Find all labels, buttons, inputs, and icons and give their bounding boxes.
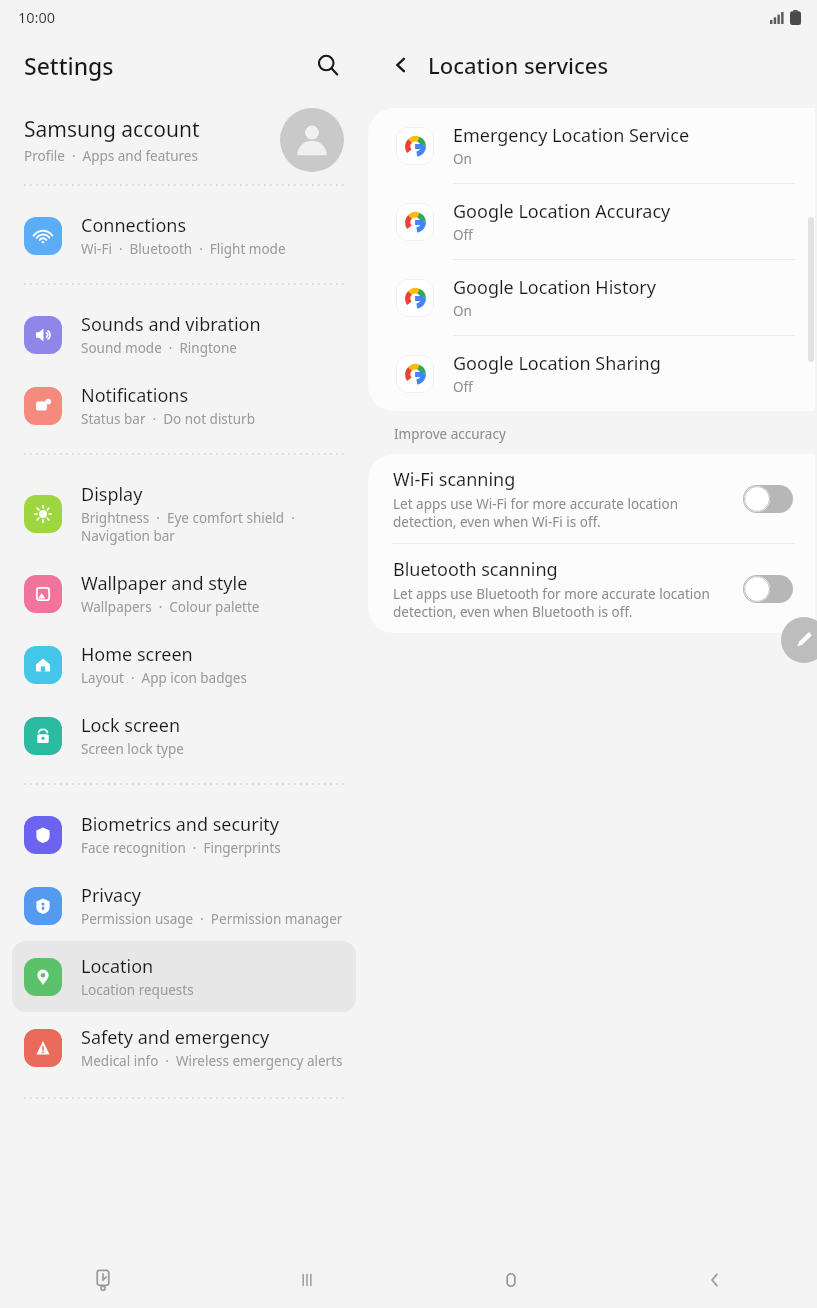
staticText: Location requests [81,981,194,999]
button[interactable]: Biometrics and security [12,799,356,870]
staticText: Layout · App icon badges [81,669,247,687]
button[interactable]: Wallpaper and style [12,558,356,629]
button[interactable]: Edit [781,617,817,663]
staticText: Google Location Sharing [453,351,661,376]
staticText: On [453,302,472,320]
staticText: Permission usage · Permission manager [81,910,343,928]
staticText: Connections [81,213,187,238]
button[interactable]: Privacy [12,870,356,941]
button[interactable]: Location [12,941,356,1012]
staticText: Location services [428,50,609,80]
staticText: Improve accuracy [394,425,506,443]
button[interactable]: Notifications [12,370,356,441]
staticText: Wi-Fi scanning [393,467,516,492]
staticText: Display [81,482,143,507]
staticText: Brightness · Eye comfort shield · [81,509,295,527]
button[interactable]: Samsung account [0,96,368,184]
button[interactable]: Google Location Sharing [368,336,815,411]
staticText: Face recognition · Fingerprints [81,839,281,857]
button[interactable]: Bluetooth scanning toggle [743,575,793,603]
staticText: Profile · Apps and features [24,147,198,165]
button[interactable]: Sounds and vibration [12,299,356,370]
staticText: Off [453,226,473,244]
staticText: Screen lock type [81,740,184,758]
staticText: Wi-Fi · Bluetooth · Flight mode [81,240,286,258]
staticText: Home screen [81,642,193,667]
button[interactable]: Back [613,1252,817,1308]
staticText: On [453,150,472,168]
button[interactable]: Search [306,43,350,87]
button[interactable]: Back [380,44,422,86]
staticText: Google Location History [453,275,656,300]
button[interactable]: Google Location Accuracy [368,184,815,259]
staticText: Let apps use Wi-Fi for more accurate loc… [393,495,678,531]
button[interactable]: Home [409,1252,613,1308]
button[interactable]: Recent apps [205,1252,409,1308]
staticText: 10:00 [18,7,56,27]
button[interactable]: Lock screen [12,700,356,771]
button[interactable]: Hide keyboard [0,1252,205,1308]
staticText: Samsung account [24,115,200,144]
button[interactable]: Home screen [12,629,356,700]
staticText: Status bar · Do not disturb [81,410,255,428]
staticText: Wallpaper and style [81,571,248,596]
staticText: Google Location Accuracy [453,199,671,224]
staticText: Lock screen [81,713,181,738]
button[interactable]: Connections [12,200,356,271]
staticText: Let apps use Bluetooth for more accurate… [393,585,710,621]
staticText: Sound mode · Ringtone [81,339,237,357]
staticText: Notifications [81,383,189,408]
staticText: Navigation bar [81,527,175,545]
staticText: Privacy [81,883,142,908]
staticText: Sounds and vibration [81,312,261,337]
staticText: Off [453,378,473,396]
staticText: Wallpapers · Colour palette [81,598,260,616]
button[interactable]: Wi-Fi scanning [368,454,815,543]
staticText: Medical info · Wireless emergency alerts [81,1052,343,1070]
staticText: Location [81,954,154,979]
staticText: Bluetooth scanning [393,557,558,582]
staticText: Settings [24,50,114,81]
button[interactable]: Emergency Location Service [368,108,815,183]
button[interactable]: Display [12,469,356,558]
button[interactable]: Bluetooth scanning [368,544,815,633]
button[interactable]: Google Location History [368,260,815,335]
staticText: Biometrics and security [81,812,279,837]
staticText: Emergency Location Service [453,123,690,148]
staticText: Safety and emergency [81,1025,270,1050]
button[interactable]: Wi-Fi scanning toggle [743,485,793,513]
button[interactable]: Safety and emergency [12,1012,356,1083]
